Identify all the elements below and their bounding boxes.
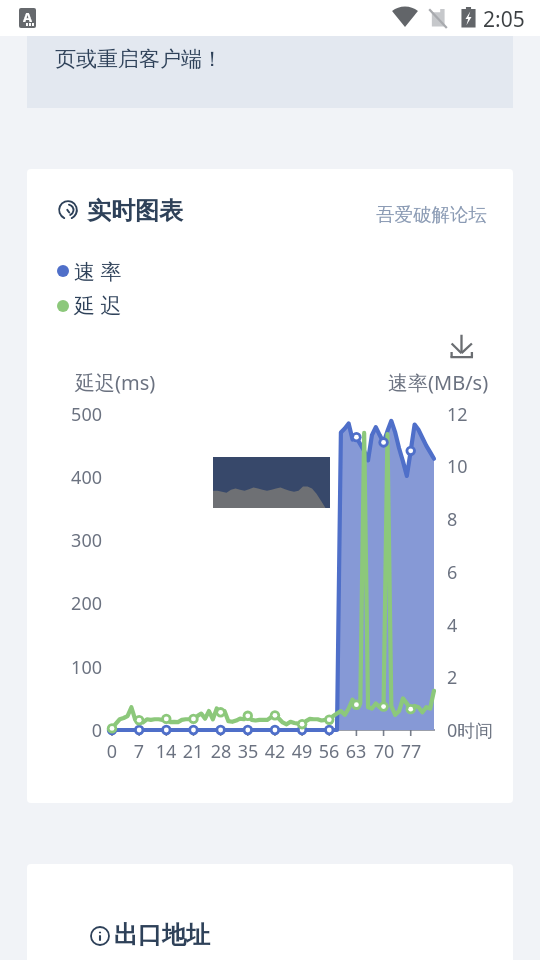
- staticText: 10: [447, 454, 468, 479]
- staticText: 0: [58, 718, 102, 743]
- staticText: 0: [97, 739, 127, 764]
- staticText: 42: [260, 739, 290, 764]
- staticText: 63: [341, 739, 371, 764]
- staticText: 12: [447, 402, 468, 427]
- staticText: 实时图表: [87, 196, 183, 226]
- staticText: 200: [58, 591, 102, 616]
- staticText: 400: [58, 465, 102, 490]
- staticText: 100: [58, 655, 102, 680]
- staticText: 速率(MB/s): [388, 369, 489, 396]
- staticText: 28: [206, 739, 236, 764]
- staticText: 56: [314, 739, 344, 764]
- staticText: 出口地址: [114, 920, 210, 950]
- staticText: 35: [233, 739, 263, 764]
- button[interactable]: 吾爱破解论坛: [376, 203, 487, 226]
- staticText: 6: [447, 560, 458, 585]
- staticText: 速 率: [74, 257, 122, 286]
- staticText: 300: [58, 528, 102, 553]
- staticText: 14: [151, 739, 181, 764]
- staticText: 0时间: [447, 718, 494, 743]
- staticText: A: [23, 8, 32, 26]
- button[interactable]: Download chart data: [445, 328, 473, 360]
- staticText: 8: [447, 507, 458, 532]
- staticText: 77: [396, 739, 426, 764]
- staticText: 4: [447, 613, 458, 638]
- staticText: 21: [178, 739, 208, 764]
- staticText: 页或重启客户端！: [55, 46, 223, 72]
- staticText: 70: [369, 739, 399, 764]
- staticText: 7: [124, 739, 154, 764]
- staticText: 延 迟: [74, 291, 122, 320]
- staticText: 延迟(ms): [75, 369, 156, 396]
- staticText: 2:05: [483, 5, 525, 34]
- staticText: 49: [287, 739, 317, 764]
- staticText: 500: [58, 402, 102, 427]
- staticText: 2: [447, 665, 458, 690]
